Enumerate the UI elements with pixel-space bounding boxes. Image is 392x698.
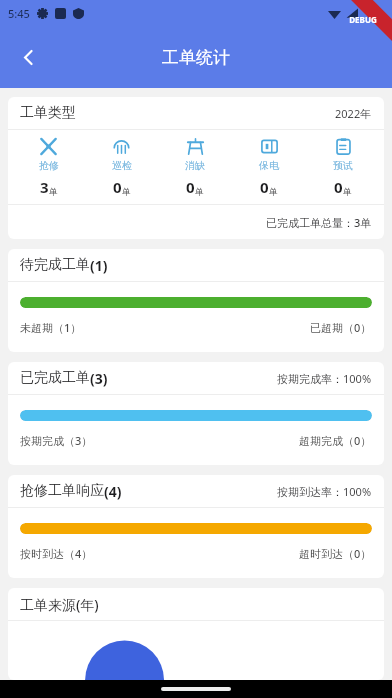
staticText: 0 (260, 177, 269, 197)
staticText: 按期完成（3） (20, 433, 93, 448)
staticText: 单 (49, 186, 58, 197)
staticText: 超时到达（0） (299, 546, 372, 561)
staticText: (1) (90, 256, 108, 275)
staticText: 已完成工单总量：3单 (266, 215, 372, 230)
button[interactable]: 巡检 (85, 137, 158, 197)
staticText: 0 (334, 177, 343, 197)
staticText: 待完成工单 (20, 256, 90, 274)
staticText: 0 (186, 177, 195, 197)
button[interactable]: 消缺 (158, 137, 232, 197)
button[interactable]: Back (6, 35, 50, 79)
button[interactable]: 抢修 (12, 137, 85, 197)
staticText: 按期到达率：100% (277, 484, 372, 499)
staticText: 抢修工单响应 (20, 482, 104, 500)
staticText: (3) (90, 369, 108, 388)
staticText: 预试 (333, 159, 353, 172)
staticText: 抢修 (39, 159, 59, 172)
staticText: 未超期（1） (20, 320, 82, 335)
button[interactable]: 保电 (232, 137, 306, 197)
staticText: 单 (195, 186, 204, 197)
staticText: 工单类型 (20, 104, 76, 122)
staticText: 巡检 (112, 159, 132, 172)
staticText: (4) (104, 482, 122, 501)
staticText: 消缺 (185, 159, 205, 172)
staticText: 单 (122, 186, 131, 197)
staticText: 已完成工单 (20, 369, 90, 387)
button[interactable]: 预试 (306, 137, 380, 197)
staticText: 工单来源(年) (20, 595, 99, 614)
staticText: 单 (269, 186, 278, 197)
staticText: 工单统计 (162, 47, 230, 68)
staticText: 超期完成（0） (299, 433, 372, 448)
staticText: 单 (343, 186, 352, 197)
staticText: DEBUG (335, 14, 391, 25)
staticText: 按时到达（4） (20, 546, 93, 561)
staticText: 已超期（0） (310, 320, 372, 335)
staticText: 保电 (259, 159, 279, 172)
staticText: 0 (113, 177, 122, 197)
staticText: 3 (40, 177, 49, 197)
staticText: 按期完成率：100% (277, 371, 372, 386)
staticText: 5:45 (8, 6, 30, 21)
staticText: 2022年 (335, 106, 372, 121)
